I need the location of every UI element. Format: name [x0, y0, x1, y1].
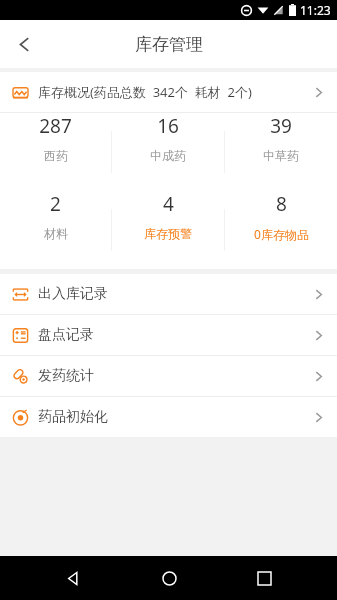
staticText: 0库存物品: [254, 226, 309, 242]
button[interactable]: Back: [51, 556, 95, 600]
button[interactable]: 2: [0, 191, 111, 241]
staticText: 库存预警: [144, 226, 192, 241]
staticText: 库存概况(药品总数 342个 耗材 2个): [38, 83, 252, 101]
staticText: 西药: [44, 148, 68, 163]
button[interactable]: 287: [0, 113, 111, 163]
staticText: 4: [163, 191, 174, 217]
staticText: 材料: [44, 226, 68, 241]
staticText: 39: [270, 113, 292, 139]
staticText: 8: [276, 191, 287, 217]
staticText: 库存管理: [135, 34, 203, 55]
button[interactable]: 出入库记录: [0, 274, 337, 314]
staticText: 11:23: [300, 2, 331, 18]
button[interactable]: 库存概况(药品总数 342个 耗材 2个): [0, 72, 337, 112]
staticText: 盘点记录: [38, 326, 94, 344]
button[interactable]: 盘点记录: [0, 315, 337, 355]
button[interactable]: 发药统计: [0, 356, 337, 396]
button[interactable]: 8: [225, 191, 337, 242]
button[interactable]: 39: [225, 113, 337, 163]
button[interactable]: Recents: [242, 556, 286, 600]
staticText: 发药统计: [38, 367, 94, 385]
staticText: 中草药: [263, 148, 299, 163]
staticText: 中成药: [150, 148, 186, 163]
staticText: 16: [157, 113, 179, 139]
button[interactable]: 16: [112, 113, 224, 163]
button[interactable]: 4: [112, 191, 224, 241]
staticText: 药品初始化: [38, 408, 108, 426]
staticText: 出入库记录: [38, 285, 108, 303]
staticText: 287: [39, 113, 72, 139]
button[interactable]: 药品初始化: [0, 397, 337, 437]
staticText: 2: [50, 191, 61, 217]
button[interactable]: Home: [147, 556, 191, 600]
button[interactable]: Back: [0, 20, 48, 68]
